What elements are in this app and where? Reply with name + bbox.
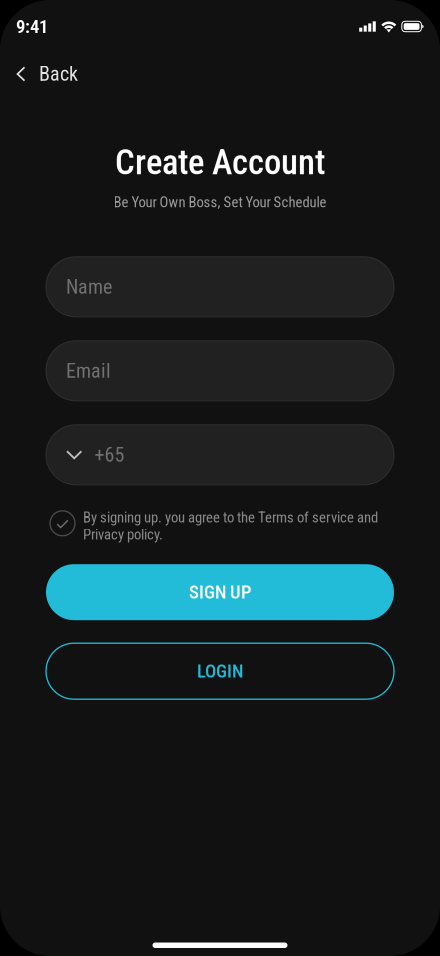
staticText: Email	[66, 359, 111, 382]
staticText: By signing up. you agree to the Terms of…	[83, 509, 378, 543]
button[interactable]: +65	[46, 425, 394, 485]
button[interactable]: By signing up. you agree to the Terms of…	[0, 485, 440, 543]
button[interactable]: LOGIN	[0, 620, 440, 699]
staticText: Be Your Own Boss, Set Your Schedule	[113, 194, 326, 211]
staticText: +65	[94, 443, 124, 466]
staticText: 9:41	[16, 16, 48, 37]
staticText: SIGN UP	[189, 581, 251, 603]
staticText: LOGIN	[197, 660, 243, 682]
button[interactable]: Back	[0, 53, 94, 95]
staticText: Back	[39, 62, 78, 86]
staticText: Create Account	[115, 142, 325, 183]
button[interactable]: SIGN UP	[0, 543, 440, 620]
staticText: Name	[66, 275, 112, 298]
